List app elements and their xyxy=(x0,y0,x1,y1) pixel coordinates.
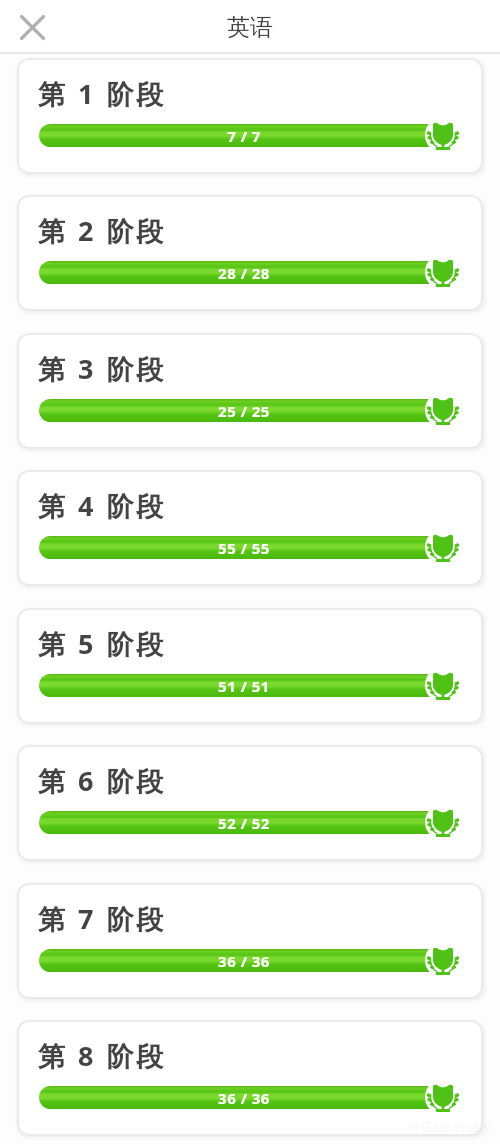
button[interactable]: 第 5 阶段 xyxy=(17,608,483,724)
button[interactable]: Close xyxy=(10,5,55,50)
staticText: @Gamersky xyxy=(408,1117,492,1136)
staticText: 7 / 7 xyxy=(227,126,261,146)
staticText: 第 2 阶段 xyxy=(38,212,167,249)
staticText: 28 / 28 xyxy=(218,263,270,283)
staticText: 51 / 51 xyxy=(218,676,270,696)
staticText: 第 5 阶段 xyxy=(38,625,167,662)
staticText: 55 / 55 xyxy=(218,538,270,558)
button[interactable]: 第 7 阶段 xyxy=(17,883,483,999)
staticText: 52 / 52 xyxy=(218,813,270,833)
button[interactable]: 第 8 阶段 xyxy=(17,1020,483,1136)
staticText: 25 / 25 xyxy=(218,401,270,421)
button[interactable]: 第 2 阶段 xyxy=(17,195,483,311)
staticText: 第 8 阶段 xyxy=(38,1037,167,1074)
staticText: 第 6 阶段 xyxy=(38,762,167,799)
staticText: 第 4 阶段 xyxy=(38,487,167,524)
button[interactable]: 第 4 阶段 xyxy=(17,470,483,586)
staticText: 第 1 阶段 xyxy=(38,75,167,112)
button[interactable]: 第 1 阶段 xyxy=(17,58,483,174)
staticText: 英语 xyxy=(227,13,273,42)
staticText: 36 / 36 xyxy=(218,1088,270,1108)
button[interactable]: 第 6 阶段 xyxy=(17,745,483,861)
staticText: 36 / 36 xyxy=(218,951,270,971)
staticText: 第 7 阶段 xyxy=(38,900,167,937)
button[interactable]: 第 3 阶段 xyxy=(17,333,483,449)
staticText: 第 3 阶段 xyxy=(38,350,167,387)
